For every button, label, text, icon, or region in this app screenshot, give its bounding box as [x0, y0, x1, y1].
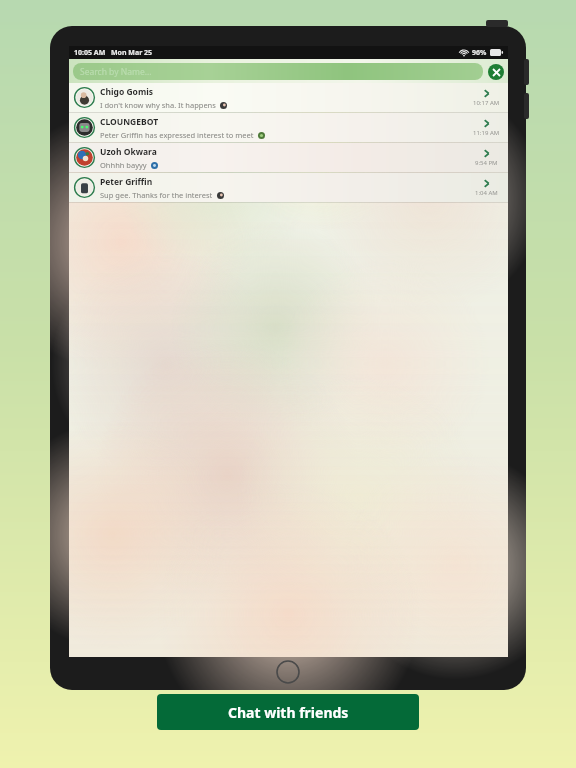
staticText: Peter Griffin has expressed interest to … — [100, 130, 254, 140]
staticText: Uzoh Okwara — [100, 146, 157, 158]
staticText: 10:05 AM — [74, 48, 106, 58]
button[interactable]: Chat with friends — [157, 694, 419, 730]
staticText: Chat with friends — [228, 703, 349, 722]
other: Home — [276, 660, 300, 684]
other: Open chat — [482, 119, 491, 128]
button[interactable]: Search by Name... — [73, 63, 483, 80]
other: Open chat — [482, 149, 491, 158]
staticText: Ohhhh bayyy — [100, 160, 147, 170]
button[interactable]: Chigo Gomis — [69, 83, 508, 112]
staticText: 10:17 AM — [473, 99, 500, 107]
other: Open chat — [482, 89, 491, 98]
staticText: Mon Mar 25 — [111, 48, 153, 58]
staticText: I don't know why sha. It happens — [100, 100, 216, 110]
other: Open chat — [482, 179, 491, 188]
staticText: CLOUNGEBOT — [100, 116, 159, 128]
staticText: 11:19 AM — [473, 129, 500, 137]
staticText: Search by Name... — [80, 66, 152, 78]
button[interactable]: Uzoh Okwara — [69, 143, 508, 172]
staticText: 1:04 AM — [475, 189, 498, 197]
staticText: Chigo Gomis — [100, 86, 153, 98]
staticText: 9:54 PM — [475, 159, 498, 167]
staticText: 96% — [472, 48, 487, 58]
staticText: Peter Griffin — [100, 176, 153, 188]
button[interactable]: Peter Griffin — [69, 173, 508, 202]
button[interactable]: Clear search — [488, 64, 504, 80]
button[interactable]: CLOUNGEBOT — [69, 113, 508, 142]
staticText: Sup gee. Thanks for the interest — [100, 190, 213, 200]
